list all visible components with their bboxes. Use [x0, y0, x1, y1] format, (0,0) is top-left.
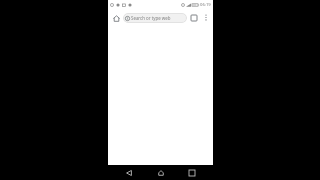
- button[interactable]: More options: [200, 12, 211, 23]
- button[interactable]: Search or type web address: [123, 13, 187, 23]
- staticText: 06:19: [200, 2, 211, 8]
- button[interactable]: Recent apps: [181, 165, 203, 180]
- button[interactable]: Home: [150, 165, 172, 180]
- staticText: Search or type web address: [131, 15, 185, 21]
- button[interactable]: Switch tabs: [188, 12, 200, 24]
- button[interactable]: Home: [110, 12, 122, 24]
- button[interactable]: Back: [118, 165, 140, 180]
